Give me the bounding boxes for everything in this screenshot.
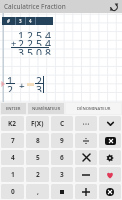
staticText: 7: [11, 136, 15, 145]
button[interactable]: 2: [26, 167, 49, 182]
staticText: 5: [27, 46, 34, 55]
staticText: 2: [36, 74, 43, 83]
button[interactable]: C: [51, 116, 73, 131]
staticText: ,: [37, 187, 39, 196]
staticText: 2: [18, 37, 25, 46]
staticText: K2: [8, 119, 17, 128]
staticText: 3: [60, 170, 64, 179]
button[interactable]: Backspace: [99, 133, 121, 148]
staticText: 2: [7, 83, 14, 92]
staticText: +: [19, 79, 25, 88]
staticText: 4: [45, 29, 52, 38]
button[interactable]: 4: [1, 150, 24, 165]
staticText: 1: [7, 74, 14, 83]
staticText: 3: [36, 83, 43, 92]
button[interactable]: 0: [1, 184, 24, 199]
staticText: 4: [29, 18, 32, 24]
button[interactable]: Minus: [75, 167, 97, 182]
staticText: +: [11, 37, 17, 46]
button[interactable]: Favorite: [99, 167, 121, 182]
staticText: 4: [45, 37, 52, 46]
button[interactable]: NUMÉRATEUR: [28, 103, 64, 114]
button[interactable]: ,: [26, 184, 49, 199]
button[interactable]: Multiply: [75, 150, 97, 165]
button[interactable]: Close: [99, 184, 121, 199]
staticText: Calculatrice Fraction: [4, 2, 66, 11]
button[interactable]: K2: [1, 116, 24, 131]
button[interactable]: 5: [26, 150, 49, 165]
button[interactable]: 1: [1, 167, 24, 182]
staticText: F(X): [31, 119, 44, 128]
button[interactable]: Equals: [51, 184, 73, 199]
button[interactable]: ENTIER: [1, 103, 26, 114]
staticText: 5: [36, 29, 43, 38]
staticText: 1: [18, 29, 25, 38]
staticText: 0: [11, 187, 15, 196]
staticText: 8: [36, 136, 40, 145]
staticText: DÉNOMINATEUR: [77, 106, 111, 112]
staticText: 2: [36, 170, 40, 179]
staticText: 2: [27, 29, 34, 38]
button[interactable]: 9: [51, 133, 73, 148]
button[interactable]: 6: [51, 150, 73, 165]
button[interactable]: Divide: [75, 133, 97, 148]
staticText: C: [60, 119, 65, 128]
staticText: #: [7, 18, 10, 24]
button[interactable]: 3: [51, 167, 73, 182]
button[interactable]: Refresh: [108, 1, 120, 13]
staticText: 3: [18, 46, 25, 55]
staticText: 2: [27, 37, 34, 46]
button[interactable]: DÉNOMINATEUR: [66, 103, 121, 114]
staticText: 0: [36, 46, 43, 55]
staticText: NUMÉRATEUR: [32, 106, 61, 112]
staticText: 1: [11, 170, 15, 179]
button[interactable]: Hide keyboard: [99, 116, 121, 131]
staticText: 5: [36, 37, 43, 46]
staticText: 9: [60, 136, 64, 145]
button[interactable]: Settings: [99, 150, 121, 165]
button[interactable]: F(X): [26, 116, 49, 131]
staticText: 6: [60, 153, 64, 162]
button[interactable]: Plus: [75, 184, 97, 199]
button[interactable]: 8: [26, 133, 49, 148]
staticText: 8: [45, 46, 52, 55]
staticText: 4: [11, 153, 15, 162]
staticText: 3: [19, 18, 22, 24]
button[interactable]: 7: [1, 133, 24, 148]
staticText: 5: [36, 153, 40, 162]
button[interactable]: More: [75, 116, 97, 131]
staticText: ENTIER: [6, 106, 21, 112]
